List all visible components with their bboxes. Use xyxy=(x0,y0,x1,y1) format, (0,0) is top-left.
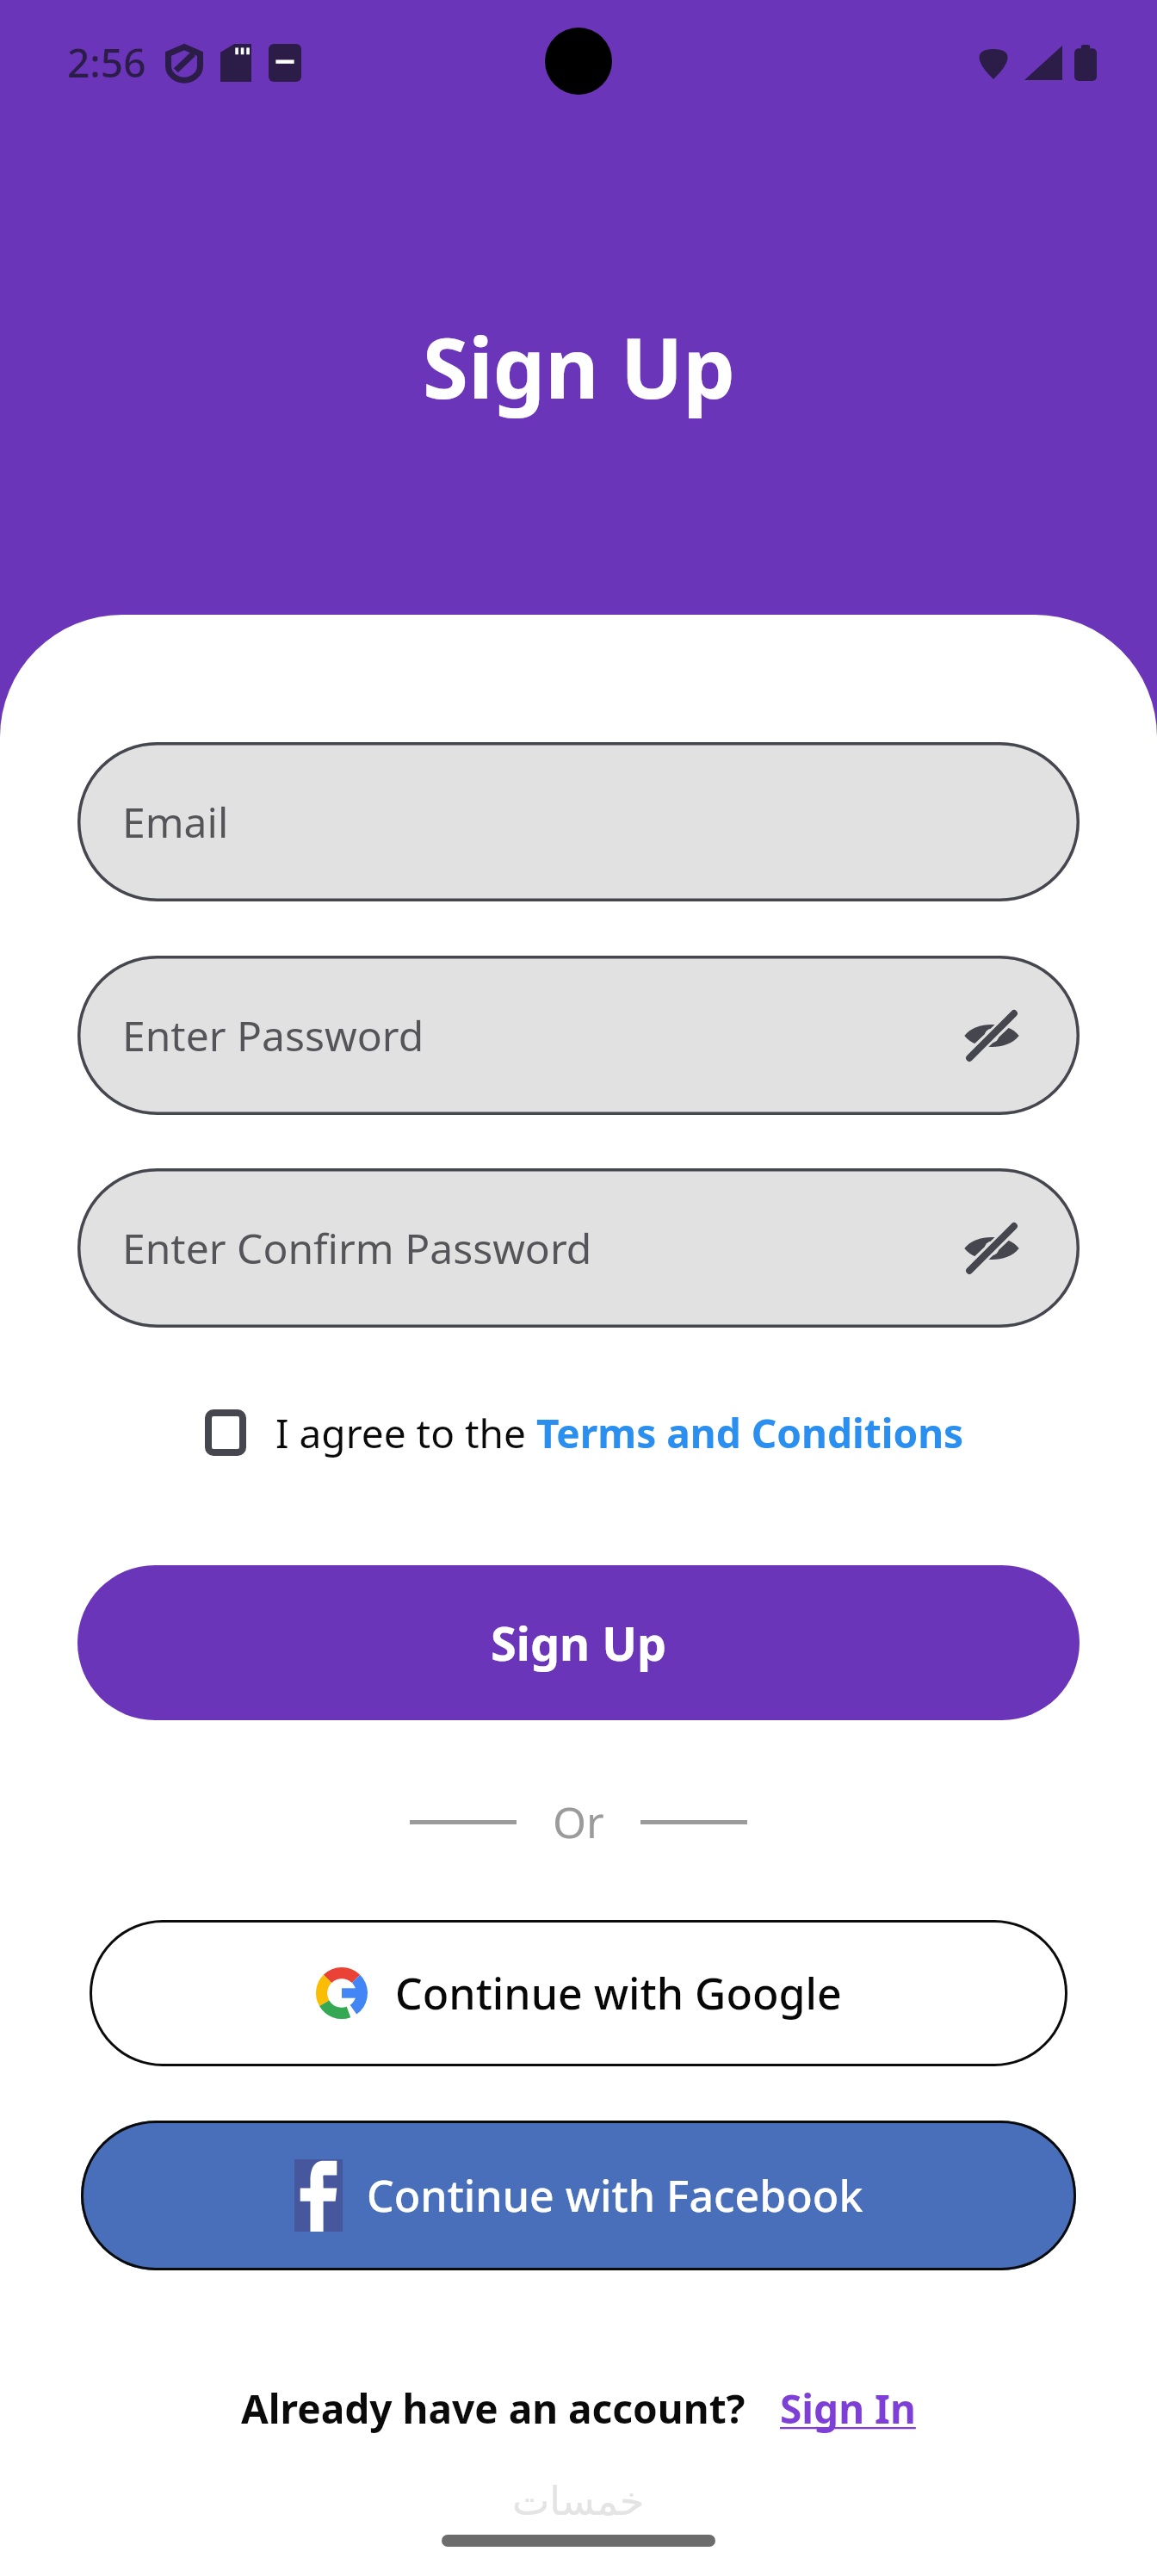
button[interactable]: Terms and Conditions xyxy=(536,1406,964,1460)
button[interactable]: I agree to the xyxy=(193,1400,536,1465)
staticText: I agree to the xyxy=(275,1406,536,1460)
button[interactable]: Sign Up xyxy=(77,1565,1080,1720)
staticText: Sign Up xyxy=(491,1611,667,1675)
button[interactable]: Email xyxy=(77,742,1080,901)
button[interactable]: Enter Password xyxy=(77,956,1080,1115)
staticText: Sign Up xyxy=(423,310,735,423)
staticText: Continue with Google xyxy=(395,1964,842,2022)
button[interactable]: Enter Confirm Password xyxy=(77,1168,1080,1328)
staticText: خمسات xyxy=(512,2478,645,2524)
staticText: Enter Password xyxy=(122,1007,424,1063)
button[interactable]: Toggle password visibility xyxy=(956,1000,1028,1072)
staticText: Email xyxy=(122,794,229,850)
button[interactable]: Toggle password visibility xyxy=(956,1212,1028,1285)
staticText: Or xyxy=(553,1793,604,1851)
button[interactable]: Continue with Facebook xyxy=(81,2121,1076,2270)
button[interactable]: Continue with Google xyxy=(90,1920,1067,2066)
staticText: Enter Confirm Password xyxy=(122,1220,592,1276)
button[interactable]: Sign In xyxy=(780,2381,916,2436)
staticText: 2:56 xyxy=(67,35,146,90)
staticText: Continue with Facebook xyxy=(367,2166,863,2225)
staticText: Already have an account? xyxy=(241,2381,746,2436)
